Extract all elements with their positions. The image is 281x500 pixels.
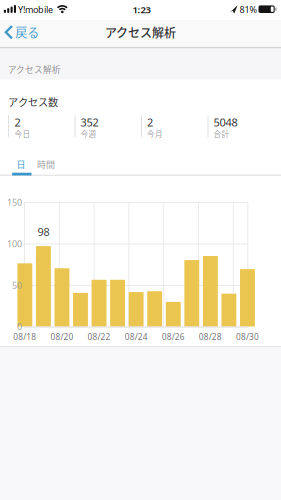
staticText: 2	[147, 115, 153, 130]
staticText: 08/24	[125, 331, 148, 342]
staticText: 150	[7, 196, 22, 208]
staticText: 5048	[213, 115, 237, 130]
staticText: 今週	[80, 128, 96, 139]
button[interactable]: 戻る	[0, 20, 52, 47]
staticText: アクセス解析	[8, 63, 61, 75]
staticText: 時間	[37, 158, 55, 171]
staticText: 合計	[213, 128, 229, 139]
staticText: 戻る	[15, 24, 39, 41]
staticText: 08/30	[236, 331, 259, 342]
staticText: 08/20	[50, 331, 73, 342]
staticText: 352	[80, 115, 98, 130]
staticText: アクセス解析	[105, 24, 176, 41]
staticText: 08/18	[13, 331, 36, 342]
staticText: 今日	[14, 128, 30, 139]
staticText: 2	[14, 115, 20, 130]
staticText: 1:23	[132, 3, 150, 16]
staticText: 08/28	[199, 331, 222, 342]
staticText: 0	[17, 320, 22, 333]
staticText: 100	[7, 238, 22, 250]
staticText: Y!mobile	[18, 3, 53, 16]
staticText: 08/26	[162, 331, 185, 342]
staticText: 今月	[147, 128, 163, 139]
button[interactable]: 時間	[31, 153, 61, 175]
staticText: 98	[37, 224, 49, 239]
staticText: 81%	[239, 3, 256, 16]
staticText: アクセス数	[8, 94, 58, 109]
button[interactable]: 日	[8, 152, 36, 176]
staticText: 08/22	[87, 331, 110, 342]
staticText: 日	[16, 158, 25, 171]
staticText: 50	[12, 279, 22, 291]
